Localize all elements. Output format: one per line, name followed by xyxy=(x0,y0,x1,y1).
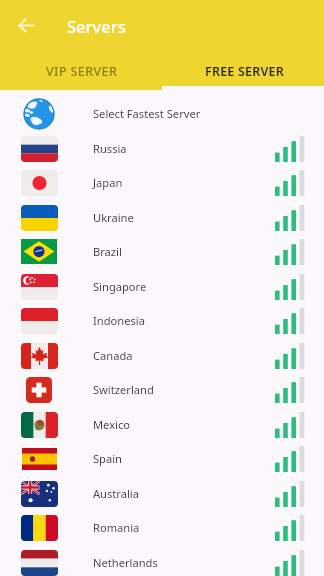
staticText: Russia xyxy=(93,141,290,156)
staticText: Japan xyxy=(93,175,290,190)
staticText: Switzerland xyxy=(93,382,290,397)
staticText: Indonesia xyxy=(93,313,290,328)
button[interactable]: Select Fastest Server xyxy=(0,96,324,131)
button[interactable]: Back xyxy=(10,9,43,42)
button[interactable]: Singapore xyxy=(0,269,324,304)
button[interactable]: Mexico xyxy=(0,407,324,442)
staticText: Romania xyxy=(93,520,290,535)
staticText: Spain xyxy=(93,451,290,466)
button[interactable]: Romania xyxy=(0,510,324,545)
staticText: Ukraine xyxy=(93,210,290,225)
staticText: Servers xyxy=(67,15,126,37)
staticText: FREE SERVER xyxy=(205,63,284,80)
staticText: Mexico xyxy=(93,417,290,432)
staticText: Australia xyxy=(93,486,290,501)
staticText: Netherlands xyxy=(93,555,290,570)
button[interactable]: Indonesia xyxy=(0,303,324,338)
staticText: Canada xyxy=(93,348,290,363)
button[interactable]: Switzerland xyxy=(0,372,324,407)
staticText: VIP SERVER xyxy=(46,63,118,80)
button[interactable]: Ukraine xyxy=(0,200,324,235)
button[interactable]: Spain xyxy=(0,441,324,476)
button[interactable]: Russia xyxy=(0,131,324,166)
staticText: Select Fastest Server xyxy=(93,106,290,121)
button[interactable]: Netherlands xyxy=(0,545,324,576)
button[interactable]: Brazil xyxy=(0,234,324,269)
button[interactable]: Canada xyxy=(0,338,324,373)
staticText: Singapore xyxy=(93,279,290,294)
button[interactable]: Australia xyxy=(0,476,324,511)
button[interactable]: Japan xyxy=(0,165,324,200)
button[interactable]: FREE SERVER xyxy=(162,47,324,90)
button[interactable]: VIP SERVER xyxy=(0,47,162,90)
staticText: Brazil xyxy=(93,244,290,259)
